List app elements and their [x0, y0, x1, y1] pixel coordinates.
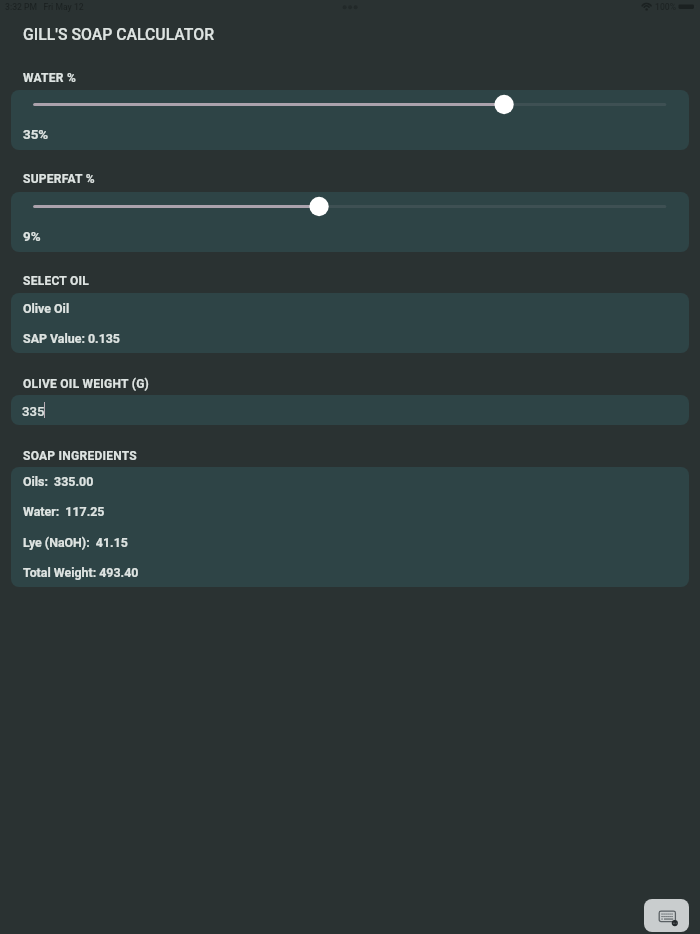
staticText: 9%	[23, 229, 41, 245]
staticText: Lye (NaOH): 41.15	[23, 535, 128, 550]
staticText: 335	[22, 404, 45, 419]
staticText: 100%	[655, 2, 676, 12]
staticText: 3:32 PM Fri May 12	[5, 2, 84, 12]
staticText: OLIVE OIL WEIGHT (G)	[23, 377, 150, 391]
staticText: WATER %	[23, 71, 77, 85]
staticText: SOAP INGREDIENTS	[23, 449, 137, 463]
staticText: SAP Value: 0.135	[23, 331, 120, 346]
staticText: GILL'S SOAP CALCULATOR	[23, 25, 215, 44]
button[interactable]: Oils: 335.00	[11, 467, 689, 587]
button[interactable]: Superfat percentage slider	[11, 192, 689, 221]
button[interactable]: Water percentage slider	[11, 90, 689, 150]
staticText: 35%	[23, 127, 49, 143]
staticText: SELECT OIL	[23, 274, 89, 288]
staticText: SUPERFAT %	[23, 172, 95, 186]
staticText: Total Weight: 493.40	[23, 565, 139, 580]
button[interactable]: Olive Oil	[11, 293, 689, 353]
button[interactable]: Superfat percentage slider	[11, 192, 689, 252]
staticText: Water: 117.25	[23, 504, 105, 519]
button[interactable]: 335	[11, 395, 689, 425]
button[interactable]: Show keyboard	[644, 899, 689, 932]
staticText: Oils: 335.00	[23, 474, 94, 489]
staticText: Olive Oil	[23, 301, 70, 316]
button[interactable]: Water percentage slider	[11, 90, 689, 119]
